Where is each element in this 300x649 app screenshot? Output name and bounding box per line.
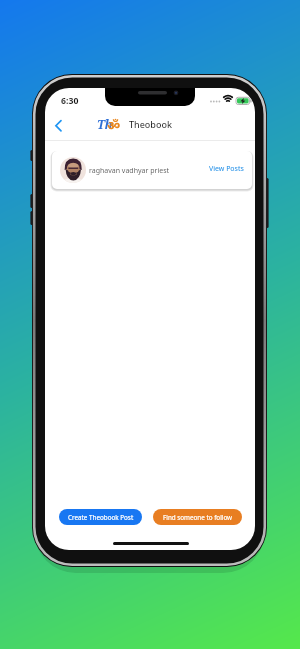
button[interactable]: Create Theobook Post xyxy=(59,509,142,525)
button[interactable]: View Posts xyxy=(204,161,248,177)
staticText: Find someone to follow xyxy=(163,513,233,522)
staticText: Th xyxy=(97,116,113,132)
staticText: Create Theobook Post xyxy=(68,513,134,522)
button[interactable]: Find someone to follow xyxy=(153,509,242,525)
staticText: ॐ xyxy=(107,116,121,134)
staticText: 6:30 xyxy=(61,95,79,107)
staticText: raghavan vadhyar priest xyxy=(89,166,170,176)
staticText: View Posts xyxy=(209,164,244,174)
button[interactable] xyxy=(50,115,68,135)
staticText: Theobook xyxy=(129,118,172,130)
